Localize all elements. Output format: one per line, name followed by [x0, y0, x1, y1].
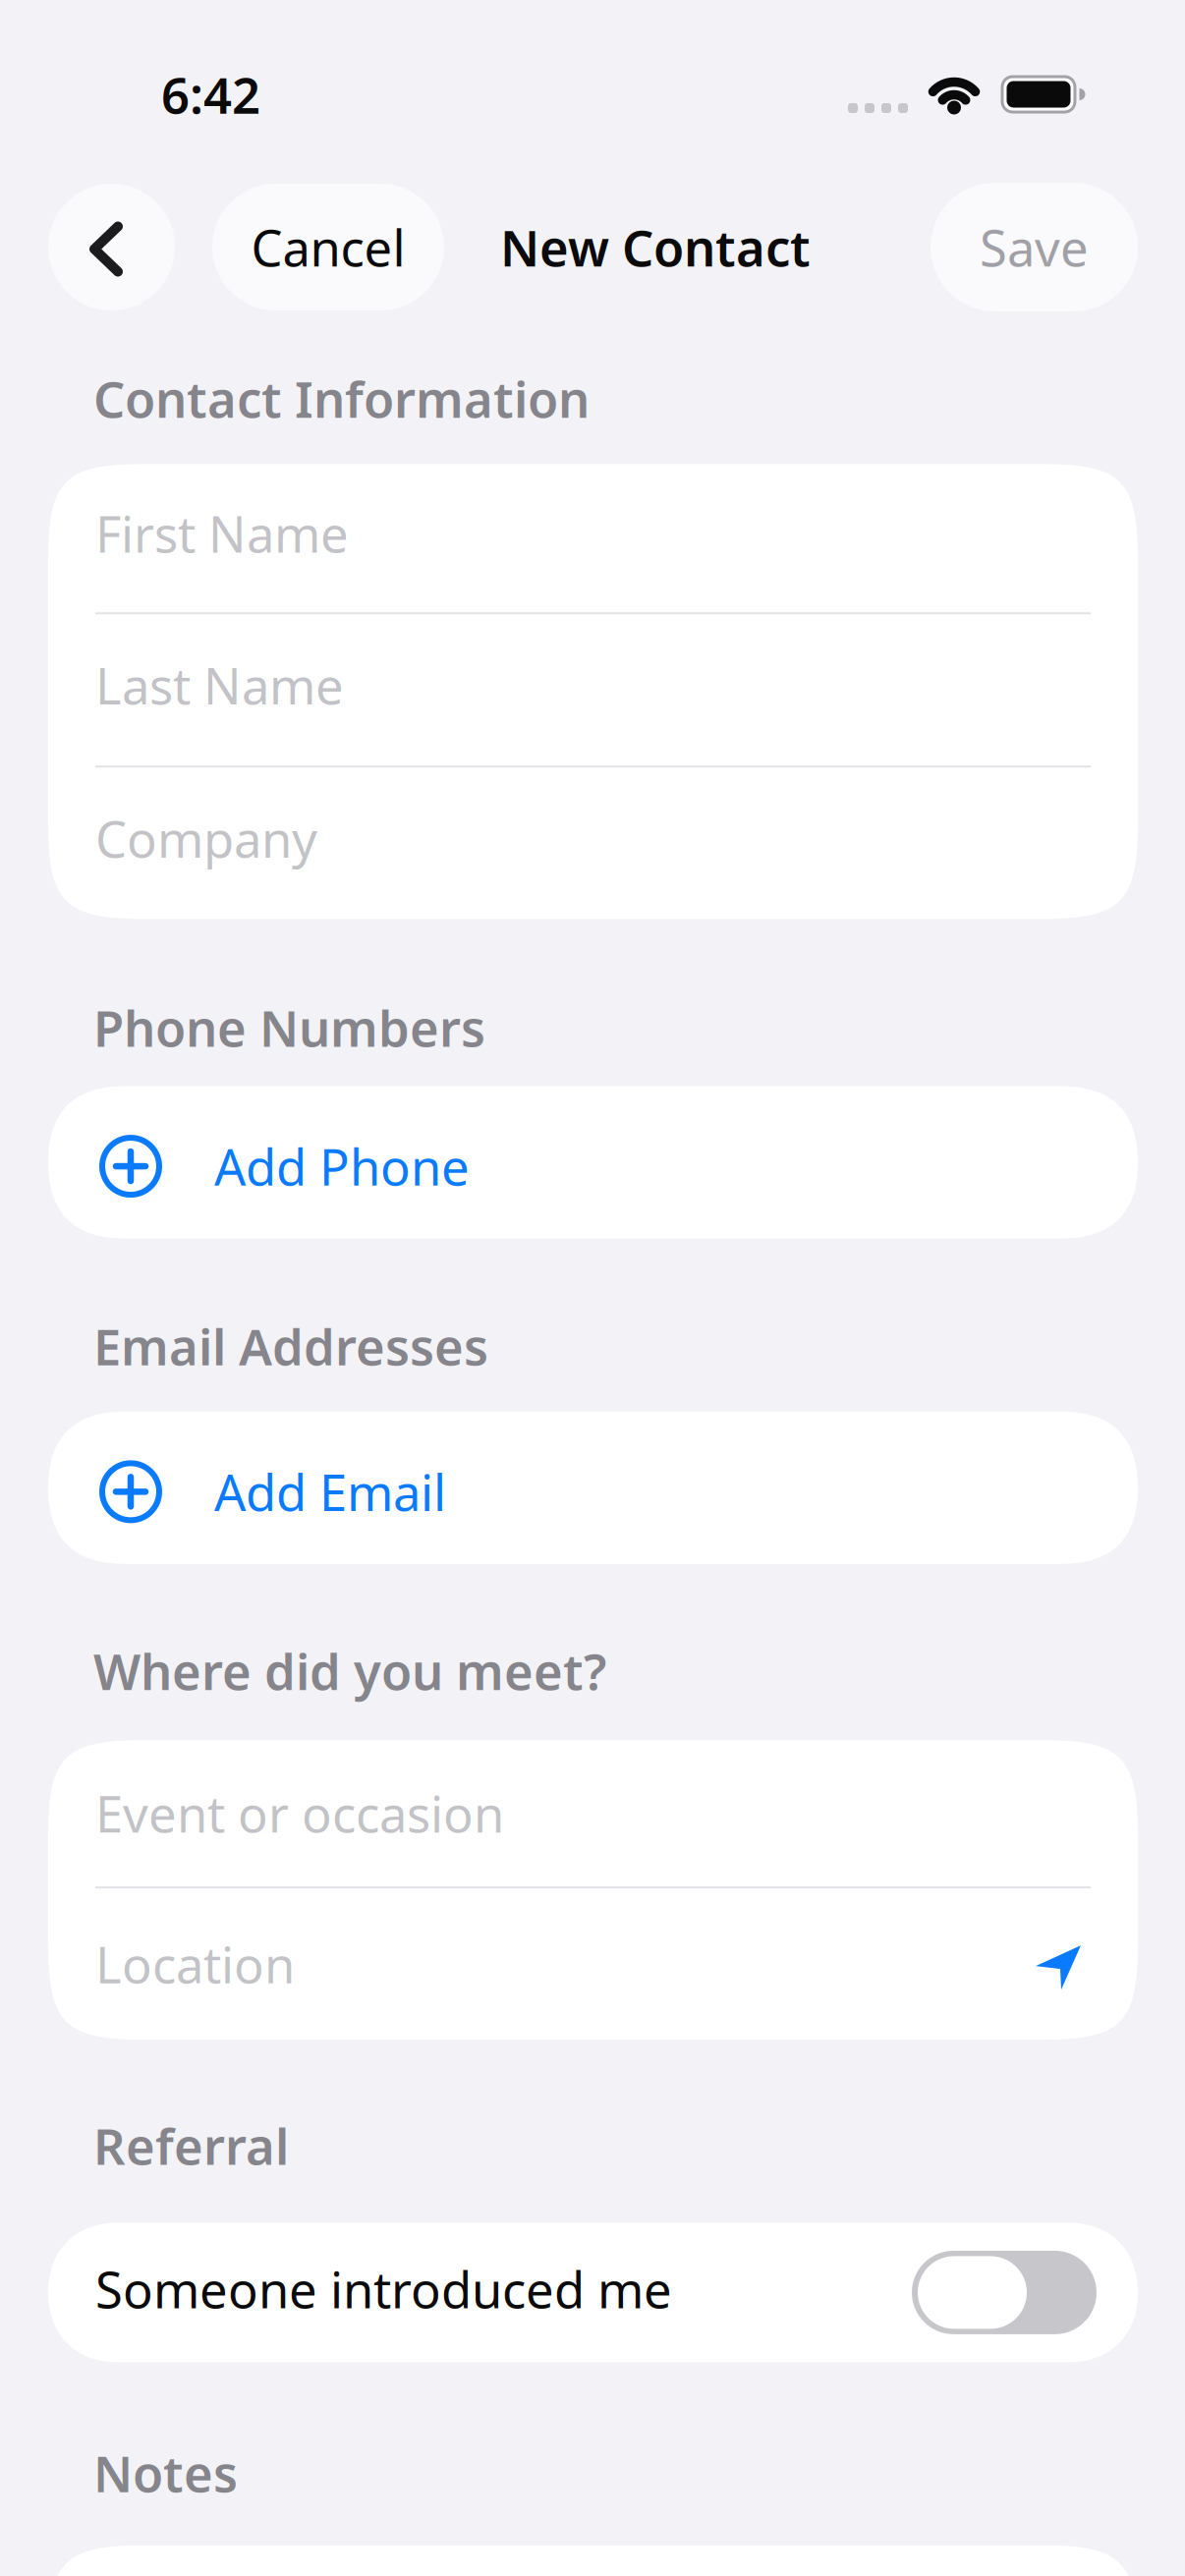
staticText: First Name — [95, 500, 349, 566]
staticText: Referral — [93, 2112, 289, 2178]
button[interactable]: Save — [931, 183, 1138, 311]
staticText: Save — [980, 214, 1089, 280]
button[interactable]: Cancel — [212, 184, 444, 310]
staticText: Location — [95, 1931, 295, 1997]
staticText: New Contact — [500, 214, 811, 280]
button[interactable]: Location — [95, 1888, 1035, 2040]
button[interactable]: Event or occasion — [48, 1740, 1138, 1886]
button[interactable]: Back — [48, 184, 175, 310]
button[interactable]: Use current location — [1035, 1888, 1138, 2040]
staticText: 6:42 — [161, 61, 260, 127]
staticText: Notes — [93, 2440, 238, 2506]
staticText: Company — [95, 805, 317, 871]
button[interactable]: Last Name — [48, 614, 1138, 766]
staticText: Someone introduced me — [95, 2256, 672, 2322]
staticText: Phone Numbers — [93, 995, 485, 1061]
staticText: Where did you meet? — [93, 1638, 606, 1704]
staticText: Add Email — [214, 1459, 446, 1525]
staticText: Email Addresses — [93, 1313, 488, 1379]
button[interactable]: Someone introduced me — [912, 2251, 1097, 2334]
staticText: Add Phone — [214, 1133, 470, 1199]
staticText: Event or occasion — [95, 1780, 504, 1846]
staticText: Last Name — [95, 652, 344, 718]
button[interactable]: Company — [48, 768, 1138, 919]
button[interactable]: First Name — [48, 464, 1138, 612]
staticText: Contact Information — [93, 365, 590, 432]
button[interactable]: Add Phone — [48, 1086, 1138, 1238]
staticText: Cancel — [251, 214, 405, 280]
button[interactable]: Add Email — [48, 1412, 1138, 1564]
